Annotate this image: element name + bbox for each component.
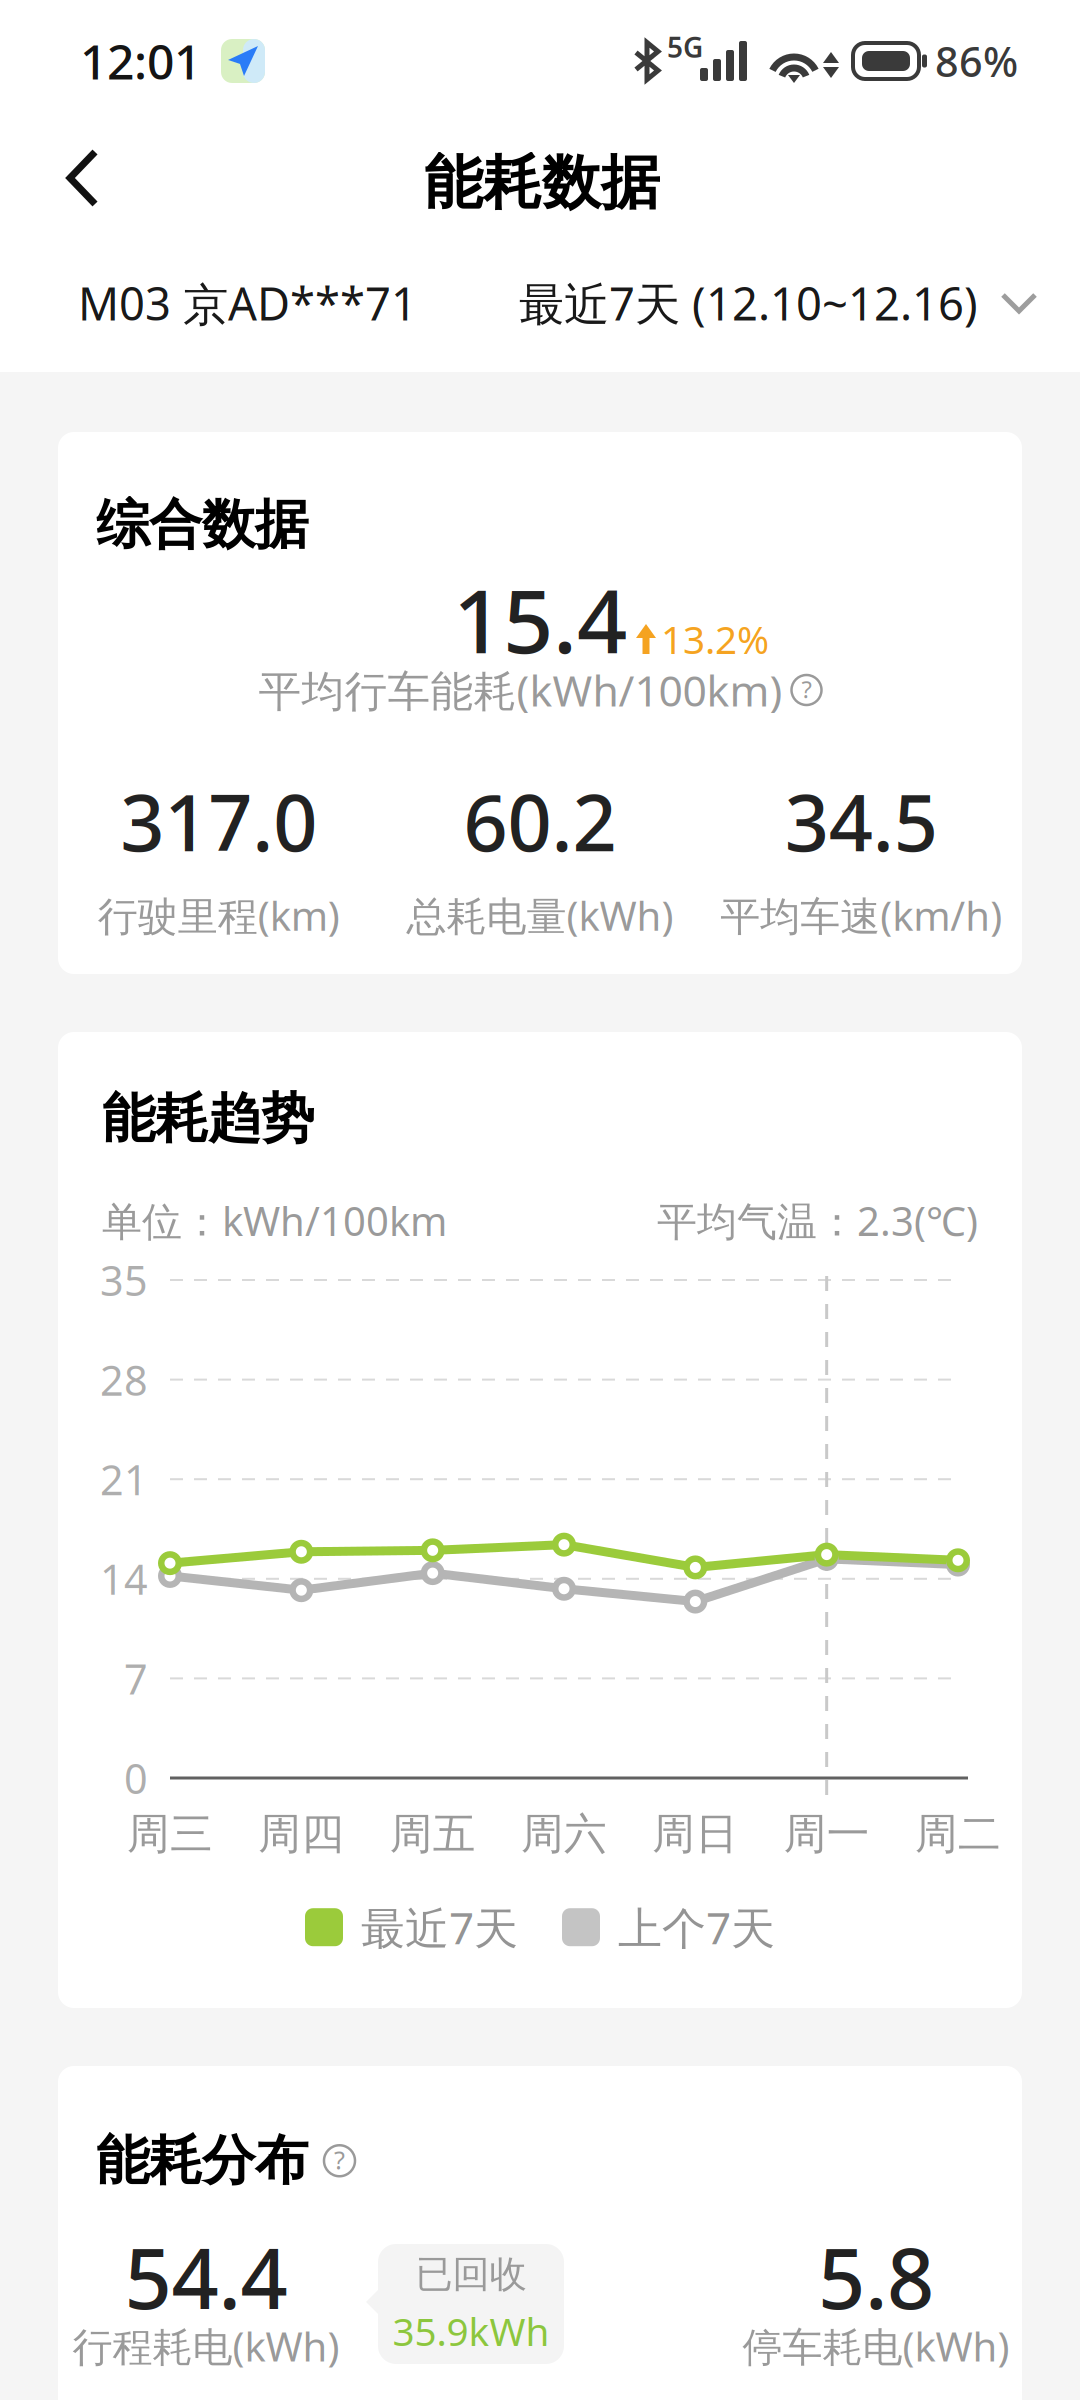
staticText: 平均气温：2.3(℃) [657,1194,978,1247]
staticText: 已回收 [415,2251,526,2297]
staticText: 21 [100,1452,148,1507]
staticText: 周三 [127,1808,213,1860]
staticText: 周二 [915,1808,1001,1860]
staticText: 35.9kWh [392,2305,549,2357]
staticText: ? [334,2143,345,2176]
staticText: ? [801,673,811,705]
staticText: 5.8 [818,2222,934,2332]
staticText: M03 京AD***71 [78,273,417,333]
staticText: 周日 [652,1808,738,1860]
staticText: 13.2% [661,613,769,665]
staticText: 平均行车能耗(kWh/100km) [258,662,782,718]
staticText: 15.4 [453,561,627,677]
staticText: 28 [100,1352,148,1407]
staticText: 能耗分布 [96,2128,308,2193]
staticText: 行程耗电(kWh) [72,2319,339,2372]
button[interactable]: Help [324,2145,355,2176]
button[interactable]: 最近7天 (12.10~12.16) [519,273,1038,333]
staticText: 单位：kWh/100km [102,1194,447,1247]
staticText: 5G [667,28,703,66]
staticText: 能耗数据 [424,147,660,219]
staticText: 周四 [258,1808,344,1860]
staticText: 平均车速(km/h) [720,889,1002,942]
staticText: 停车耗电(kWh) [742,2319,1009,2372]
staticText: 317.0 [120,770,317,873]
button[interactable]: Back [28,123,138,233]
staticText: 最近7天 [361,1898,518,1956]
staticText: 总耗电量(kWh) [406,889,673,942]
staticText: 综合数据 [96,492,308,557]
staticText: 14 [100,1551,148,1606]
staticText: 60.2 [463,770,616,873]
staticText: 7 [124,1651,148,1706]
staticText: 能耗趋势 [102,1086,314,1151]
staticText: 0 [124,1751,148,1805]
staticText: 35 [100,1253,148,1307]
staticText: 86% [935,34,1018,88]
staticText: 周五 [390,1808,476,1860]
staticText: 周六 [521,1808,607,1860]
staticText: 上个7天 [618,1898,775,1956]
staticText: 行驶里程(km) [98,889,340,942]
staticText: 最近7天 (12.10~12.16) [519,273,978,333]
staticText: 54.4 [124,2222,287,2332]
staticText: 34.5 [785,770,938,873]
staticText: 12:01 [80,29,201,93]
staticText: 周一 [784,1808,870,1860]
